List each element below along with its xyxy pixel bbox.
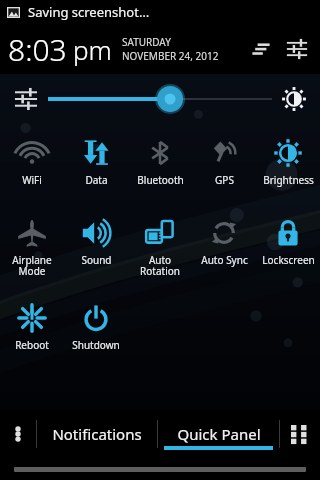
button[interactable]: All apps	[280, 410, 320, 458]
staticText: Quick Panel	[177, 424, 261, 444]
staticText: Airplane Mode	[12, 253, 52, 278]
staticText: Saving screenshot…	[28, 3, 150, 21]
button[interactable]: Clear notifications	[248, 35, 276, 63]
staticText: pm	[73, 32, 112, 67]
staticText: Data	[85, 173, 108, 187]
button[interactable]: Airplane Mode	[0, 210, 64, 295]
staticText: 8:03	[8, 29, 67, 70]
button[interactable]: Auto Sync	[192, 210, 256, 295]
button[interactable]: Notifications	[37, 410, 157, 458]
staticText: Shutdown	[72, 338, 120, 352]
staticText: SATURDAY	[122, 35, 171, 49]
button[interactable]: Data	[64, 130, 128, 210]
button[interactable]: Lockscreen	[256, 210, 320, 295]
staticText: Reboot	[15, 338, 49, 352]
button[interactable]: Brightness	[256, 130, 320, 210]
staticText: WiFi	[22, 173, 42, 187]
staticText: NOVEMBER 24, 2012	[122, 49, 219, 63]
staticText: Sound	[81, 253, 112, 267]
staticText: Notifications	[52, 424, 142, 444]
staticText: Bluetooth	[137, 173, 184, 187]
button[interactable]: GPS	[192, 130, 256, 210]
button[interactable]: Shutdown	[64, 295, 128, 375]
staticText: Auto Rotation	[140, 253, 180, 278]
button[interactable]: Sound	[64, 210, 128, 295]
button[interactable]: Quick Panel	[158, 410, 279, 458]
staticText: GPS	[215, 173, 234, 187]
staticText: Brightness	[263, 173, 314, 187]
staticText: Auto Sync	[201, 253, 248, 267]
button[interactable]: Settings	[282, 34, 312, 64]
button[interactable]: Reboot	[0, 295, 64, 375]
button[interactable]: Auto Rotation	[128, 210, 192, 295]
button[interactable]: Bluetooth	[128, 130, 192, 210]
button[interactable]: Brightness settings	[4, 77, 48, 121]
button[interactable]: More options	[0, 410, 36, 458]
button[interactable]: WiFi	[0, 130, 64, 210]
staticText: Lockscreen	[262, 253, 315, 267]
button[interactable]: Brightness slider	[48, 79, 272, 119]
button[interactable]: Auto brightness	[272, 77, 316, 121]
